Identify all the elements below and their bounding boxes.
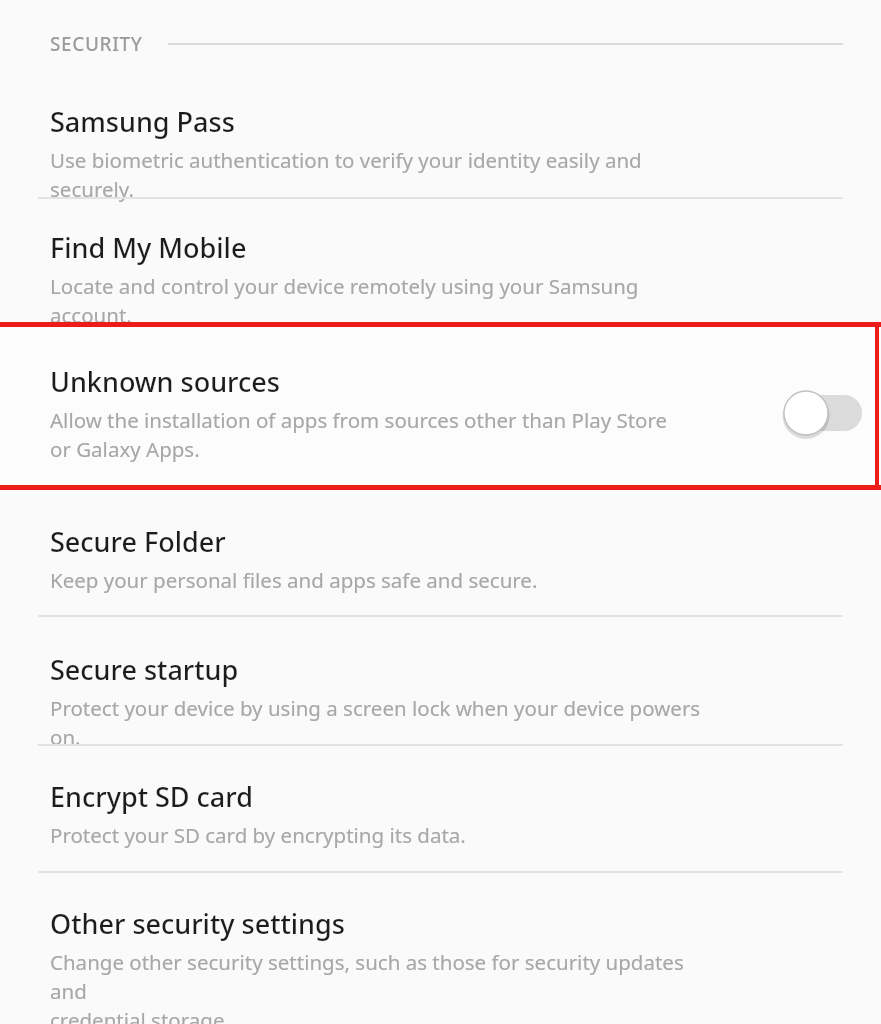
button[interactable]: Samsung Pass (0, 103, 881, 203)
staticText: Locate and control your device remotely … (50, 272, 721, 329)
staticText: Find My Mobile (50, 229, 247, 266)
staticText: SECURITY (50, 31, 143, 57)
button[interactable]: Secure startup (0, 651, 881, 751)
button[interactable]: Other security settings (0, 905, 881, 1024)
staticText: Allow the installation of apps from sour… (50, 406, 668, 463)
staticText: Other security settings (50, 905, 345, 942)
staticText: Change other security settings, such as … (50, 948, 721, 1024)
staticText: Use biometric authentication to verify y… (50, 146, 721, 203)
staticText: Unknown sources (50, 363, 280, 400)
button[interactable]: Unknown sources toggle, off (778, 387, 868, 439)
button[interactable]: Unknown sources (0, 363, 881, 463)
button[interactable]: Find My Mobile (0, 229, 881, 329)
staticText: Encrypt SD card (50, 778, 253, 815)
button[interactable]: Encrypt SD card (0, 778, 881, 849)
staticText: Protect your device by using a screen lo… (50, 694, 721, 751)
button[interactable]: Secure Folder (0, 523, 881, 594)
staticText: Secure Folder (50, 523, 226, 560)
staticText: Keep your personal files and apps safe a… (50, 566, 538, 594)
staticText: Secure startup (50, 651, 239, 688)
staticText: Protect your SD card by encrypting its d… (50, 821, 466, 849)
staticText: Samsung Pass (50, 103, 235, 140)
